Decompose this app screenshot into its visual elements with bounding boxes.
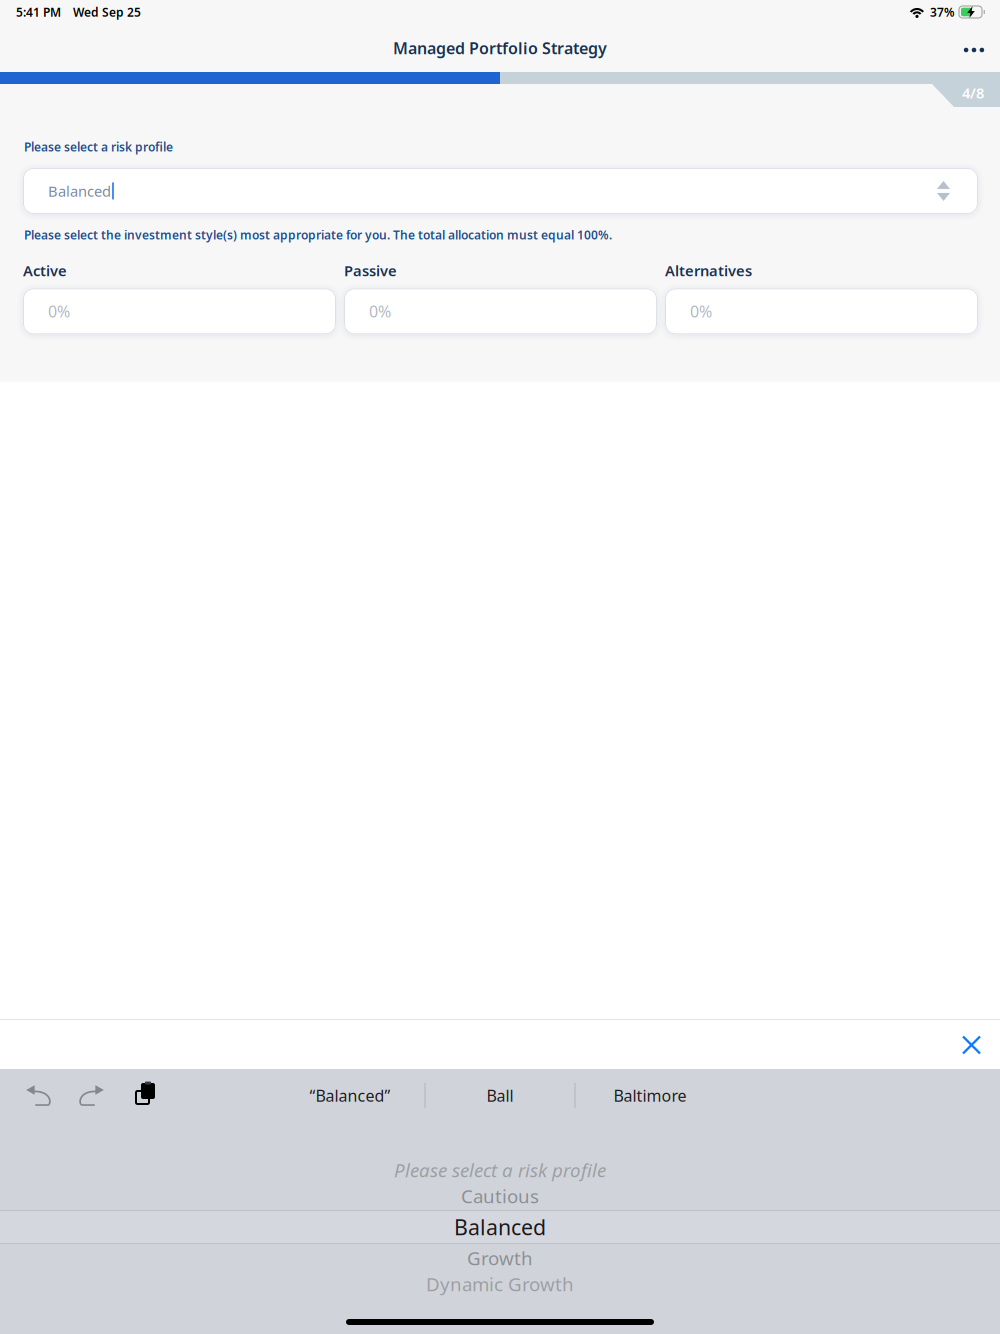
button[interactable]: Paste	[117, 1069, 169, 1121]
staticText: Alternatives	[665, 261, 752, 280]
staticText: Please select a risk profile	[394, 1158, 606, 1182]
button[interactable]: Baltimore	[575, 1075, 724, 1115]
staticText: Balanced	[48, 181, 111, 201]
staticText: Cautious	[461, 1184, 539, 1208]
staticText: 5:41 PM	[16, 4, 61, 20]
button[interactable]: Dismiss keyboard	[949, 1022, 993, 1066]
button[interactable]: 0%	[344, 288, 657, 334]
staticText: Dynamic Growth	[426, 1272, 574, 1296]
button[interactable]: Redo	[65, 1069, 117, 1121]
staticText: Growth	[467, 1246, 533, 1270]
staticText: 0%	[369, 301, 391, 322]
staticText: Please select a risk profile	[24, 139, 173, 155]
button[interactable]: Balanced	[23, 168, 978, 214]
button[interactable]: 0%	[665, 288, 978, 334]
staticText: 0%	[690, 301, 712, 322]
staticText: “Balanced”	[309, 1085, 390, 1106]
staticText: Managed Portfolio Strategy	[393, 37, 607, 59]
staticText: Balanced	[454, 1213, 546, 1241]
staticText: 0%	[48, 301, 70, 322]
button[interactable]: “Balanced”	[275, 1075, 424, 1115]
staticText: Baltimore	[613, 1085, 686, 1106]
staticText: Ball	[486, 1085, 513, 1106]
button[interactable]: 0%	[23, 288, 336, 334]
button[interactable]: Undo	[13, 1069, 65, 1121]
staticText: 4/8	[962, 83, 984, 102]
staticText: 37%	[930, 4, 955, 20]
staticText: Active	[23, 261, 67, 280]
button[interactable]: Ball	[425, 1075, 574, 1115]
staticText: Wed Sep 25	[73, 4, 141, 20]
staticText: Passive	[344, 261, 397, 280]
staticText: Please select the investment style(s) mo…	[24, 227, 612, 243]
button[interactable]: More options	[950, 26, 998, 70]
